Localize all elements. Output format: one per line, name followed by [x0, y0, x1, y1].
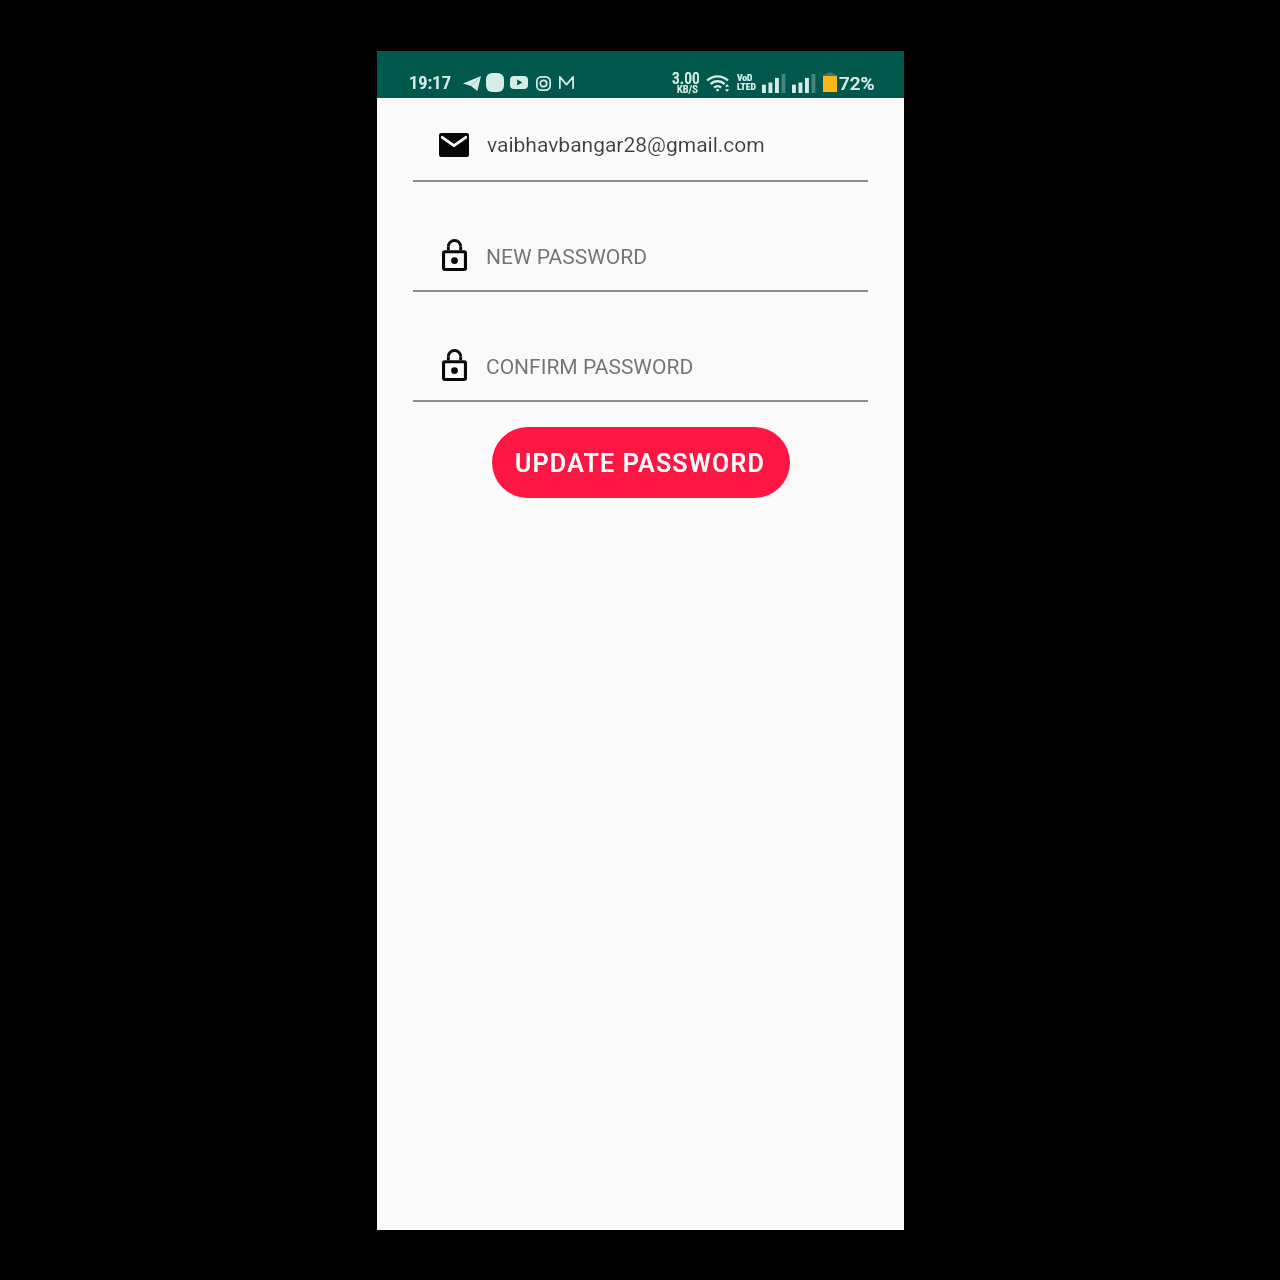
staticText: 3.00 — [672, 70, 700, 88]
staticText: 19:17 — [409, 72, 451, 94]
other: Password — [442, 349, 467, 381]
staticText: 72% — [839, 72, 875, 94]
button[interactable]: Password — [413, 236, 868, 294]
staticText: LTED — [737, 81, 756, 92]
staticText: CONFIRM PASSWORD — [486, 355, 694, 380]
button[interactable]: E-mail — [413, 127, 868, 184]
staticText: vaibhavbangar28@gmail.com — [487, 133, 765, 158]
button[interactable]: UPDATE PASSWORD — [492, 427, 790, 498]
staticText: UPDATE PASSWORD — [515, 449, 765, 478]
other: E-mail — [439, 133, 469, 157]
other: Password — [442, 239, 467, 271]
staticText: NEW PASSWORD — [486, 245, 648, 270]
button[interactable]: Password — [413, 346, 868, 405]
staticText: VoD — [737, 72, 753, 83]
staticText: KB/S — [677, 83, 698, 95]
